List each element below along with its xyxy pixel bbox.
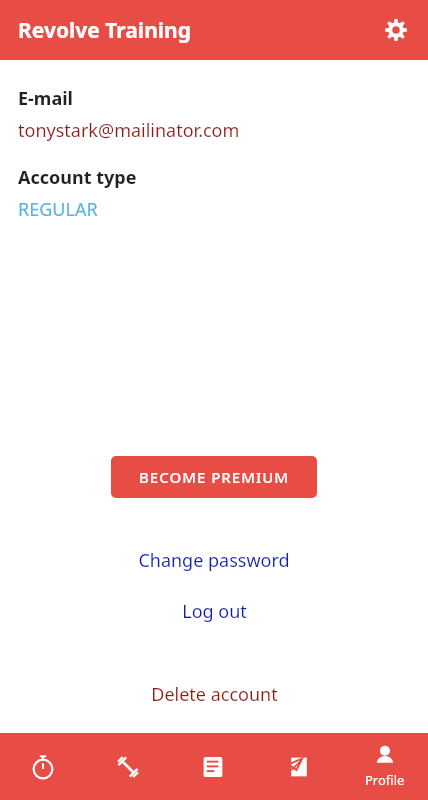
staticText: Profile (365, 771, 405, 789)
button[interactable]: Exercises (85, 733, 170, 800)
button[interactable]: Change password (126, 544, 302, 577)
staticText: BECOME PREMIUM (139, 467, 290, 487)
button[interactable]: Profile (342, 733, 428, 800)
button[interactable]: Log out (170, 595, 259, 628)
staticText: Delete account (151, 682, 278, 707)
staticText: Account type (18, 165, 137, 190)
button[interactable]: Settings (374, 8, 418, 52)
staticText: REGULAR (18, 197, 98, 222)
staticText: tonystark@mailinator.com (18, 118, 240, 143)
button[interactable]: Notes (256, 733, 342, 800)
button[interactable]: BECOME PREMIUM (111, 456, 317, 498)
staticText: Log out (182, 599, 247, 624)
staticText: Change password (138, 548, 290, 573)
staticText: Revolve Training (18, 16, 191, 45)
button[interactable]: Delete account (139, 678, 290, 711)
button[interactable]: Timer (0, 733, 85, 800)
staticText: E-mail (18, 86, 73, 111)
button[interactable]: Plans (170, 733, 256, 800)
